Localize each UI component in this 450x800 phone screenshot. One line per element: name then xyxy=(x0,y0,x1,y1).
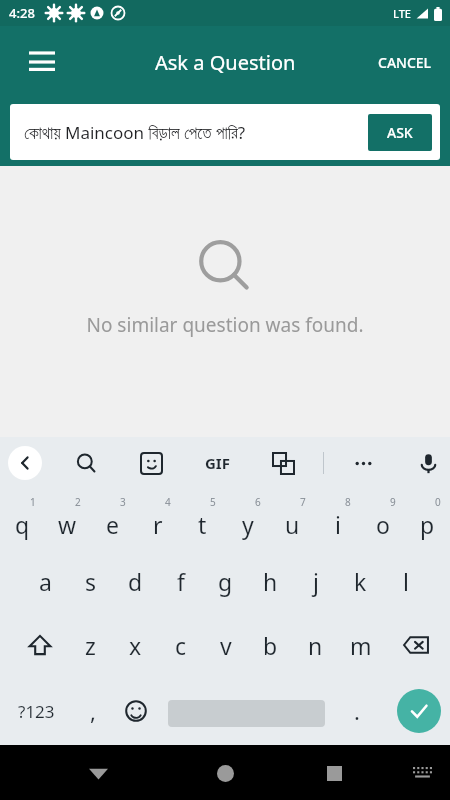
button[interactable]: v xyxy=(203,617,248,673)
staticText: 9 xyxy=(390,495,396,509)
button[interactable]: y xyxy=(225,488,270,550)
button[interactable]: d xyxy=(113,550,158,612)
button[interactable]: j xyxy=(293,550,338,612)
button[interactable]: m xyxy=(338,617,383,673)
button[interactable]: k xyxy=(338,550,383,612)
staticText: 5 xyxy=(210,495,216,509)
button[interactable]: a xyxy=(23,550,68,612)
button[interactable]: g xyxy=(203,550,248,612)
button[interactable]: Translate xyxy=(262,442,304,484)
button[interactable]: Recent apps xyxy=(312,751,356,795)
staticText: 3 xyxy=(120,495,126,509)
button[interactable]: Shift xyxy=(18,623,62,667)
button[interactable]: Delete xyxy=(394,623,438,667)
button[interactable]: Search xyxy=(65,442,107,484)
button[interactable]: Emoji xyxy=(114,687,158,735)
button[interactable]: Home xyxy=(203,751,247,795)
staticText: a xyxy=(39,566,52,597)
button[interactable]: s xyxy=(68,550,113,612)
button[interactable]: q xyxy=(0,488,45,550)
button[interactable]: z xyxy=(68,617,113,673)
staticText: Ask a Question xyxy=(155,49,296,76)
staticText: 2 xyxy=(75,495,81,509)
button[interactable]: n xyxy=(293,617,338,673)
staticText: p xyxy=(420,509,435,540)
button[interactable]: Open navigation menu xyxy=(22,42,62,82)
staticText: e xyxy=(106,509,119,540)
staticText: g xyxy=(218,566,233,597)
button[interactable]: CANCEL xyxy=(368,43,442,82)
button[interactable]: r xyxy=(135,488,180,550)
staticText: w xyxy=(58,509,77,540)
button[interactable]: t xyxy=(180,488,225,550)
button[interactable]: Comma xyxy=(72,687,114,735)
button[interactable]: ASK xyxy=(368,114,432,151)
button[interactable]: f xyxy=(158,550,203,612)
button[interactable]: w xyxy=(45,488,90,550)
staticText: t xyxy=(198,509,207,540)
staticText: s xyxy=(85,566,97,597)
staticText: i xyxy=(335,509,341,540)
staticText: k xyxy=(354,566,367,597)
staticText: j xyxy=(313,566,319,597)
staticText: n xyxy=(308,630,323,661)
button[interactable]: Enter xyxy=(397,689,441,733)
staticText: ASK xyxy=(387,123,413,142)
button[interactable]: ?123 xyxy=(6,687,66,735)
staticText: h xyxy=(263,566,278,597)
button[interactable]: o xyxy=(360,488,405,550)
button[interactable]: i xyxy=(315,488,360,550)
staticText: m xyxy=(350,630,372,661)
staticText: f xyxy=(177,566,185,597)
staticText: y xyxy=(242,509,254,540)
staticText: কোথায় Maincoon বিড়াল পেতে পারি? xyxy=(24,121,246,144)
button[interactable]: Voice input xyxy=(407,442,449,484)
button[interactable]: Stickers xyxy=(130,442,172,484)
button[interactable]: Back xyxy=(8,446,42,480)
button[interactable]: p xyxy=(405,488,450,550)
staticText: , xyxy=(90,696,96,726)
staticText: LTE xyxy=(393,6,411,21)
staticText: No similar question was found. xyxy=(86,312,364,338)
staticText: c xyxy=(175,630,187,661)
button[interactable]: b xyxy=(248,617,293,673)
staticText: b xyxy=(263,630,278,661)
staticText: l xyxy=(403,566,409,597)
staticText: 1 xyxy=(30,495,36,509)
button[interactable]: Period xyxy=(336,687,378,735)
staticText: CANCEL xyxy=(378,53,432,72)
staticText: 7 xyxy=(300,495,306,509)
staticText: . xyxy=(354,696,360,726)
button[interactable]: Switch keyboard xyxy=(402,753,442,793)
staticText: u xyxy=(285,509,300,540)
staticText: o xyxy=(376,509,390,540)
staticText: 4 xyxy=(165,495,171,509)
button[interactable]: l xyxy=(383,550,428,612)
staticText: 6 xyxy=(255,495,261,509)
staticText: GIF xyxy=(205,453,230,473)
button[interactable]: e xyxy=(90,488,135,550)
staticText: z xyxy=(85,630,96,661)
staticText: x xyxy=(129,630,142,661)
button[interactable]: c xyxy=(158,617,203,673)
button[interactable]: x xyxy=(113,617,158,673)
staticText: 8 xyxy=(345,495,351,509)
button[interactable]: More options xyxy=(342,442,384,484)
button[interactable]: h xyxy=(248,550,293,612)
staticText: v xyxy=(220,630,232,661)
button[interactable]: u xyxy=(270,488,315,550)
staticText: ?123 xyxy=(18,700,55,723)
staticText: 4:28 xyxy=(9,4,35,22)
button[interactable]: GIF xyxy=(196,442,238,484)
staticText: d xyxy=(128,566,143,597)
staticText: 0 xyxy=(435,495,441,509)
staticText: q xyxy=(15,509,30,540)
button[interactable]: Back xyxy=(76,751,120,795)
staticText: r xyxy=(153,509,163,540)
